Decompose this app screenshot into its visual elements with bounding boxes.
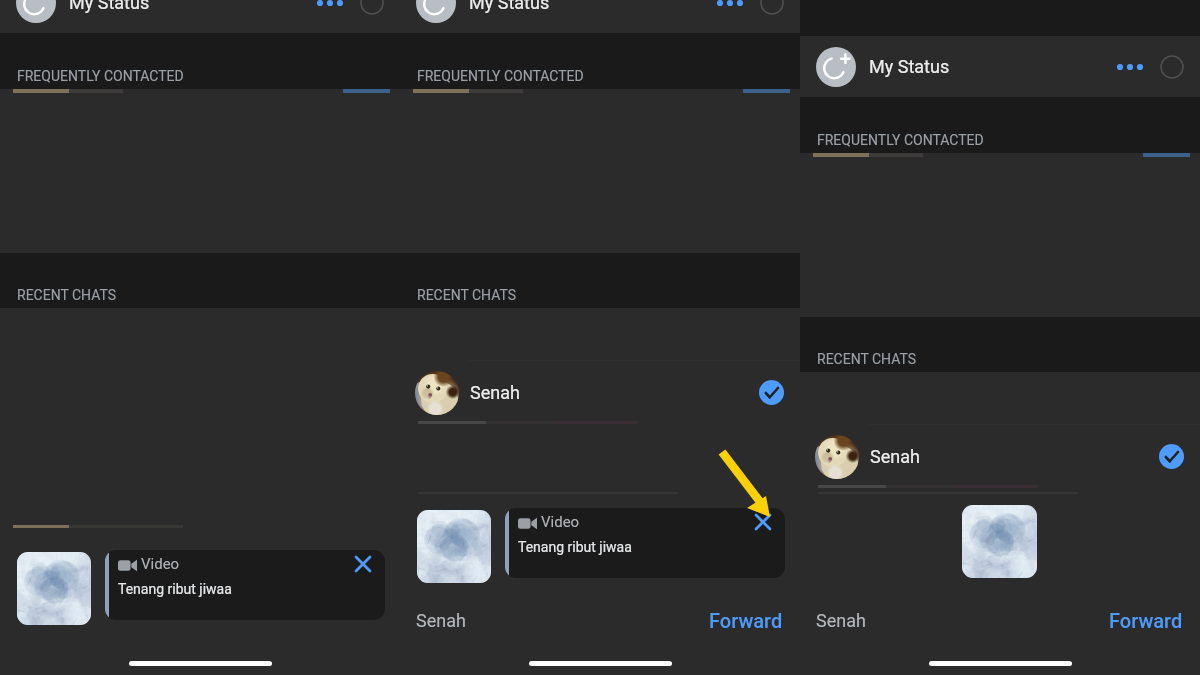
button[interactable]: Forward — [1109, 609, 1183, 632]
button[interactable]: Senah — [400, 362, 800, 423]
staticText: RECENT CHATS — [17, 287, 117, 303]
staticText: My Status — [69, 0, 150, 13]
staticText: Tenang ribut jiwaa — [118, 581, 232, 597]
staticText: RECENT CHATS — [417, 287, 517, 303]
staticText: Senah — [470, 382, 520, 403]
button[interactable]: Close — [350, 551, 376, 577]
button[interactable]: Select all — [358, 0, 386, 17]
button[interactable]: More options — [710, 0, 750, 23]
button[interactable]: Video — [505, 508, 785, 578]
staticText: Tenang ribut jiwaa — [518, 539, 632, 555]
staticText: FREQUENTLY CONTACTED — [17, 68, 184, 84]
button[interactable]: My Status — [0, 0, 400, 33]
button[interactable]: My Status — [800, 36, 1200, 97]
button[interactable]: Select all — [1158, 53, 1186, 81]
button[interactable]: Select all — [758, 0, 786, 17]
button[interactable]: More options — [1110, 47, 1150, 87]
button[interactable]: Forward — [709, 609, 783, 632]
staticText: Senah — [870, 446, 920, 467]
button[interactable]: Close — [750, 509, 776, 535]
staticText: Forward — [709, 609, 783, 632]
staticText: My Status — [469, 0, 550, 13]
staticText: Video — [141, 555, 180, 573]
button[interactable]: Senah — [800, 426, 1200, 487]
staticText: FREQUENTLY CONTACTED — [417, 68, 584, 84]
staticText: FREQUENTLY CONTACTED — [817, 132, 984, 148]
staticText: Senah — [416, 610, 466, 631]
staticText: RECENT CHATS — [817, 351, 917, 367]
button[interactable]: My Status — [400, 0, 800, 33]
button[interactable]: Video — [105, 550, 385, 620]
staticText: Senah — [816, 610, 866, 631]
staticText: Forward — [1109, 609, 1183, 632]
staticText: My Status — [869, 56, 950, 77]
staticText: Video — [541, 513, 580, 531]
button[interactable]: More options — [310, 0, 350, 23]
